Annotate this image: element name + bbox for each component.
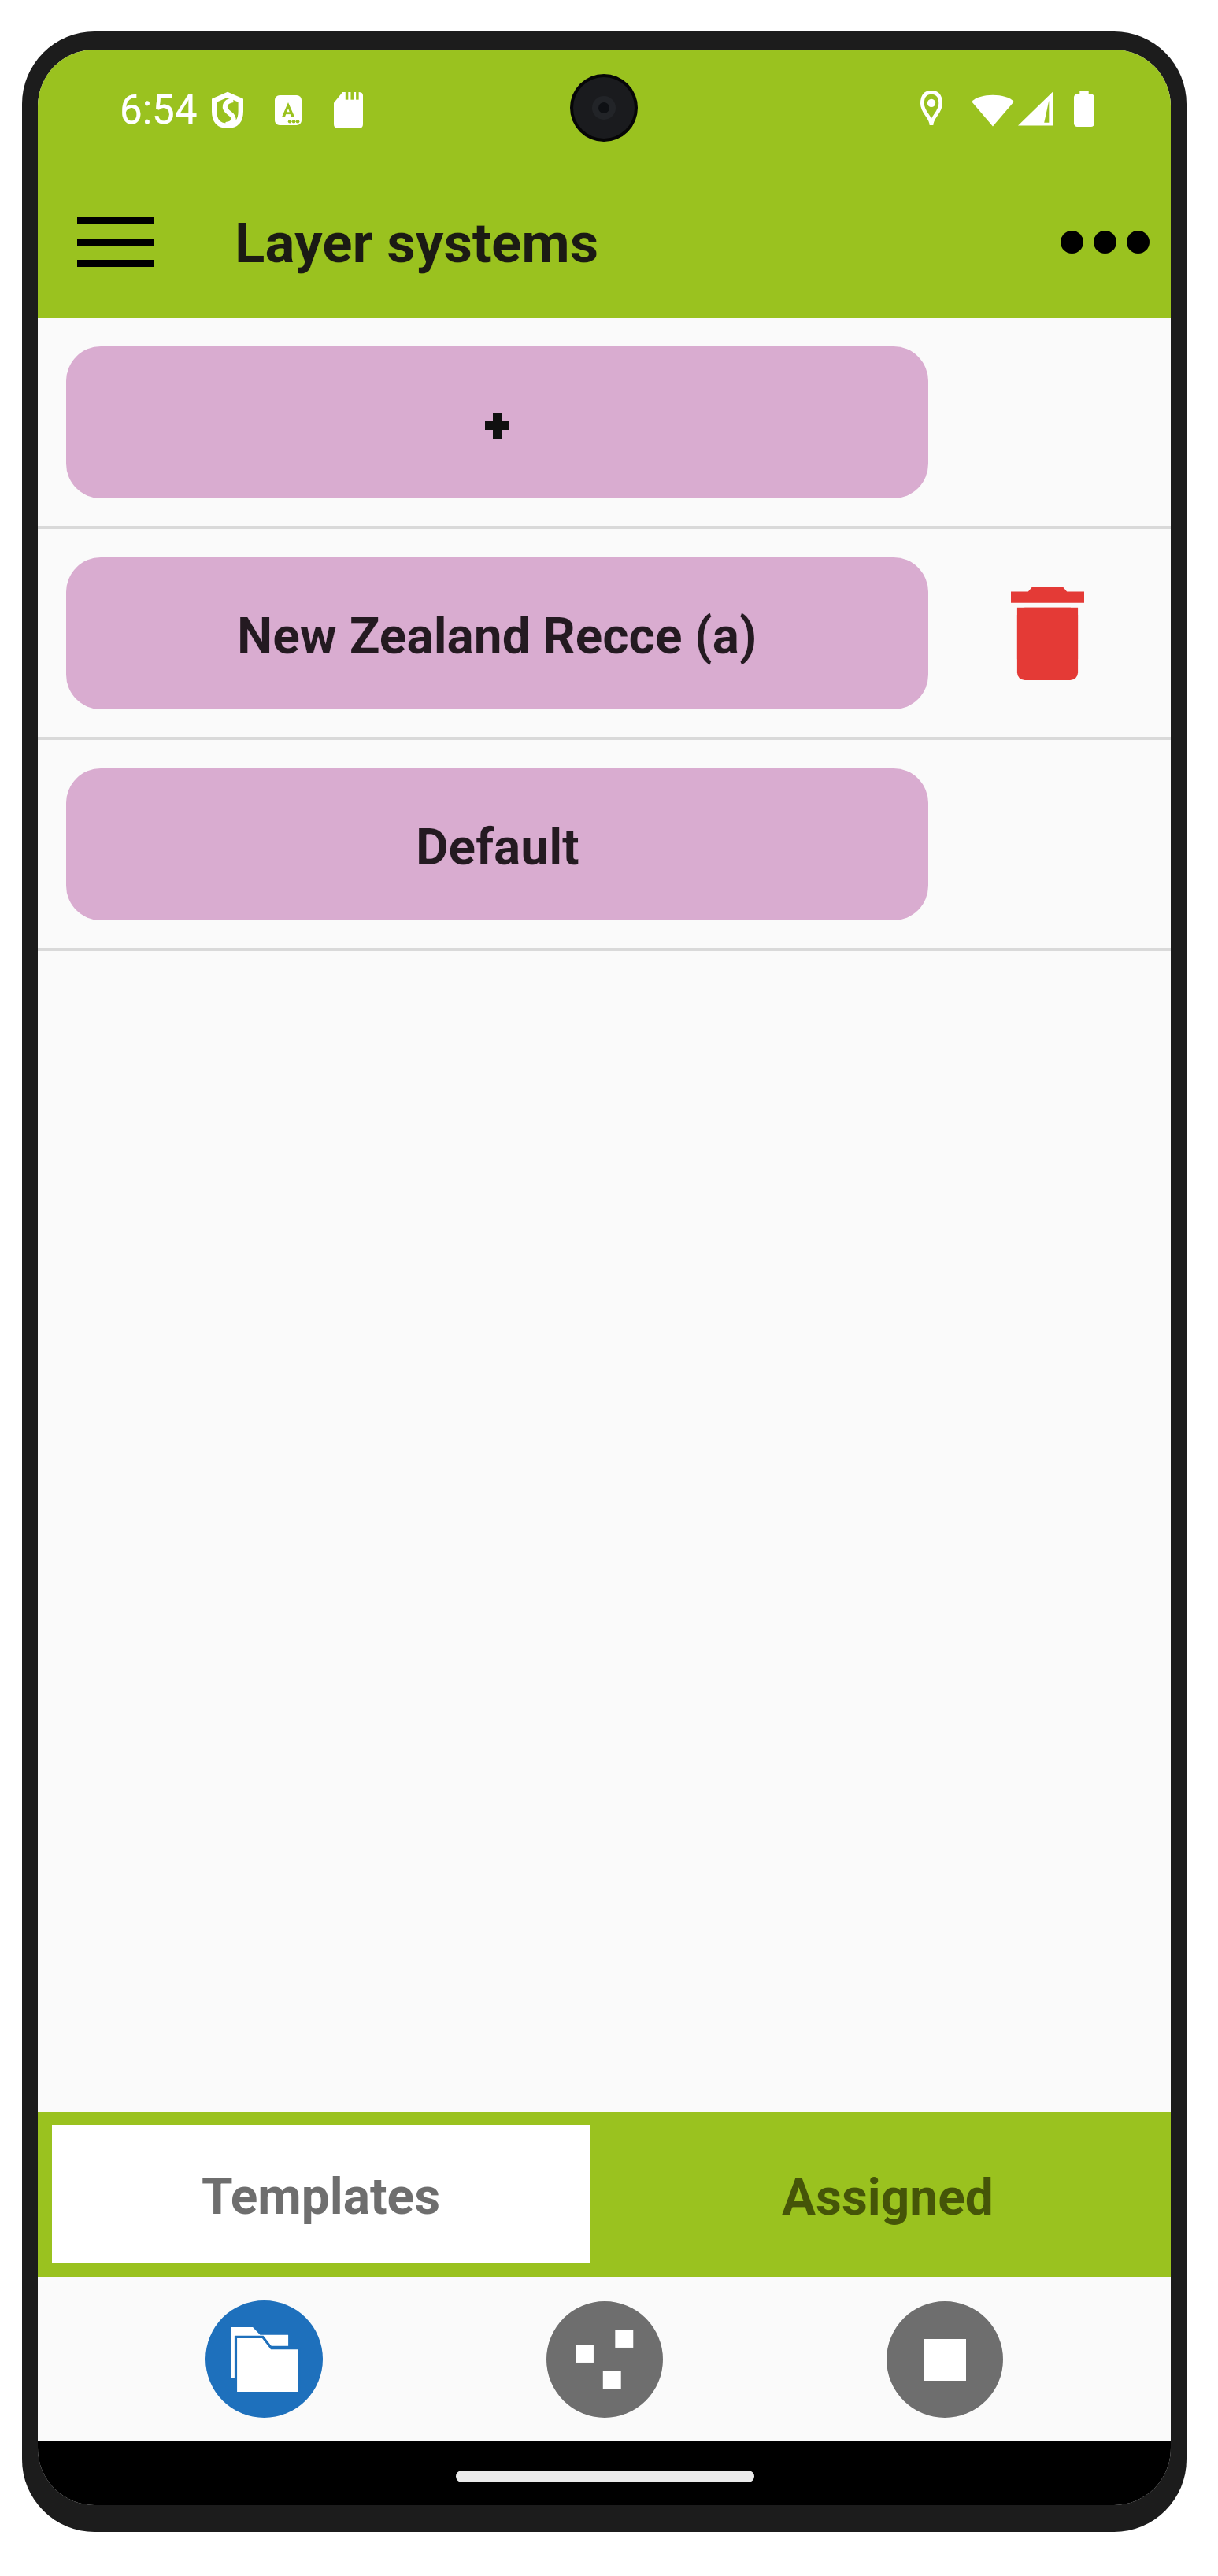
staticText: Assigned (782, 2168, 994, 2227)
button[interactable]: Open navigation drawer (55, 182, 176, 302)
button[interactable]: Stop (887, 2301, 1003, 2418)
button[interactable]: New Zealand Recce (a) (66, 557, 928, 709)
staticText: Layer systems (235, 210, 599, 276)
button[interactable]: Templates (52, 2125, 590, 2263)
staticText: Templates (202, 2167, 441, 2226)
button[interactable]: Default (66, 768, 928, 920)
staticText: Default (416, 818, 579, 877)
button[interactable]: Delete layer system (984, 570, 1110, 696)
staticText: 6:54 (120, 87, 198, 134)
staticText: New Zealand Recce (a) (237, 607, 757, 666)
button[interactable]: Assigned (604, 2112, 1171, 2277)
button[interactable]: Overview (546, 2301, 663, 2418)
button[interactable]: Add layer system (66, 346, 928, 498)
button[interactable]: More options (1045, 182, 1165, 302)
button[interactable]: Files (205, 2300, 323, 2418)
